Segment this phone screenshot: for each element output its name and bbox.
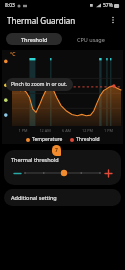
staticText: Pinch to zoom in or out.: [11, 81, 68, 88]
button[interactable]: [25, 167, 100, 179]
staticText: 1 PM: [98, 128, 119, 133]
staticText: °C: [10, 51, 16, 58]
staticText: Threshold: [21, 36, 48, 43]
button[interactable]: Decrease threshold: [11, 167, 23, 179]
staticText: Threshold: [76, 136, 100, 143]
button[interactable]: CPU usage: [62, 33, 119, 45]
button[interactable]: Additional setting: [4, 189, 121, 206]
button[interactable]: Pinch to zoom in or out.: [11, 81, 68, 88]
staticText: 6 AM: [56, 128, 77, 133]
staticText: 57%: [103, 2, 113, 9]
button[interactable]: Threshold: [6, 33, 62, 45]
staticText: 1 PM: [12, 128, 34, 133]
staticText: CPU usage: [77, 36, 105, 43]
staticText: 12 PM: [77, 128, 98, 133]
staticText: Additional setting: [11, 194, 57, 201]
staticText: 12 AM: [34, 128, 56, 133]
staticText: Thermal threshold: [11, 156, 59, 163]
button[interactable]: Increase threshold: [102, 167, 114, 179]
button[interactable]: More options: [105, 12, 121, 28]
staticText: 8:03: [5, 2, 15, 9]
staticText: Thermal Guardian: [7, 15, 76, 26]
staticText: Temperature: [32, 136, 63, 143]
staticText: 7: [55, 147, 58, 154]
